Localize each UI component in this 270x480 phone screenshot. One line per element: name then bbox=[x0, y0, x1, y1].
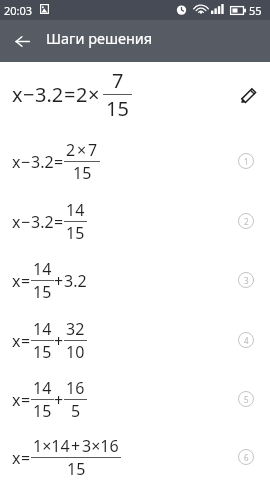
staticText: = bbox=[21, 389, 31, 411]
staticText: x bbox=[12, 447, 21, 469]
staticText: + bbox=[71, 435, 81, 457]
button[interactable]: x bbox=[0, 310, 270, 370]
button[interactable]: x bbox=[0, 427, 270, 480]
staticText: 7 bbox=[88, 139, 98, 161]
button[interactable]: x bbox=[0, 191, 270, 251]
staticText: − bbox=[21, 151, 31, 173]
staticText: 2 bbox=[244, 216, 249, 227]
staticText: 5 bbox=[71, 400, 81, 422]
staticText: x bbox=[12, 211, 21, 233]
staticText: 15 bbox=[73, 162, 92, 184]
staticText: x bbox=[12, 151, 21, 173]
staticText: 14 bbox=[33, 318, 52, 340]
staticText: 55 bbox=[249, 3, 262, 18]
staticText: 20:03 bbox=[4, 3, 33, 18]
staticText: 32 bbox=[66, 318, 85, 340]
staticText: 14 bbox=[66, 199, 85, 221]
staticText: 15 bbox=[33, 400, 52, 422]
staticText: x bbox=[12, 81, 23, 108]
staticText: 2 bbox=[66, 139, 76, 161]
staticText: = bbox=[21, 447, 31, 469]
staticText: × bbox=[77, 139, 87, 161]
staticText: − bbox=[21, 211, 31, 233]
staticText: Шаги решения bbox=[46, 28, 153, 48]
button[interactable]: x bbox=[0, 131, 270, 191]
staticText: 4 bbox=[244, 335, 249, 346]
staticText: 3.2 bbox=[35, 81, 64, 108]
staticText: = bbox=[21, 330, 31, 352]
staticText: = bbox=[21, 270, 31, 292]
staticText: + bbox=[54, 270, 64, 292]
staticText: + bbox=[54, 389, 64, 411]
staticText: 3.2 bbox=[64, 270, 87, 292]
staticText: x bbox=[12, 389, 21, 411]
staticText: 14 bbox=[33, 377, 52, 399]
staticText: 7 bbox=[112, 67, 124, 94]
button[interactable]: Back bbox=[1, 20, 43, 62]
staticText: − bbox=[23, 81, 35, 108]
button[interactable]: Edit bbox=[232, 78, 266, 112]
staticText: 1 bbox=[244, 156, 249, 167]
staticText: 15 bbox=[33, 341, 52, 363]
staticText: 16 bbox=[66, 377, 85, 399]
staticText: 5 bbox=[244, 394, 249, 405]
staticText: 10 bbox=[66, 341, 85, 363]
staticText: 2 bbox=[76, 81, 88, 108]
staticText: × bbox=[88, 81, 100, 108]
staticText: = bbox=[54, 151, 64, 173]
staticText: x bbox=[12, 270, 21, 292]
staticText: 3.2 bbox=[31, 211, 54, 233]
staticText: 3.2 bbox=[31, 151, 54, 173]
button[interactable]: x bbox=[0, 250, 270, 310]
staticText: + bbox=[54, 330, 64, 352]
button[interactable]: x bbox=[0, 369, 270, 429]
staticText: 15 bbox=[67, 458, 86, 480]
staticText: 1×14 bbox=[33, 435, 70, 457]
staticText: = bbox=[54, 211, 64, 233]
staticText: 14 bbox=[33, 258, 52, 280]
staticText: = bbox=[64, 81, 76, 108]
staticText: 3×16 bbox=[82, 435, 119, 457]
staticText: 15 bbox=[106, 95, 129, 122]
staticText: 3 bbox=[244, 275, 249, 286]
staticText: x bbox=[12, 330, 21, 352]
staticText: 15 bbox=[66, 222, 85, 244]
staticText: 6 bbox=[244, 452, 249, 463]
staticText: 15 bbox=[33, 281, 52, 303]
